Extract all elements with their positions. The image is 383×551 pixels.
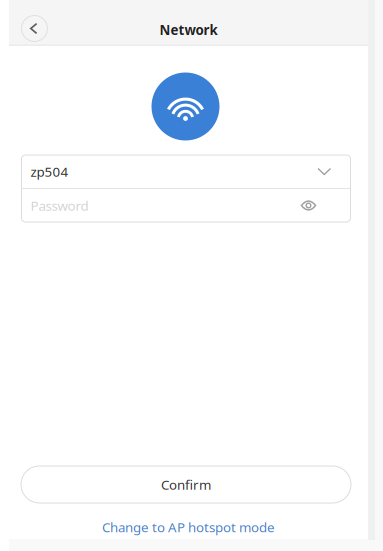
staticText: Network xyxy=(159,21,217,39)
button[interactable]: zp504 xyxy=(21,155,350,188)
staticText: Change to AP hotspot mode xyxy=(102,518,275,536)
button[interactable]: Back xyxy=(17,11,51,45)
staticText: zp504 xyxy=(30,163,68,180)
button[interactable]: Confirm xyxy=(21,466,351,503)
staticText: Password xyxy=(30,197,88,214)
button[interactable]: Show password xyxy=(297,194,319,216)
staticText: Confirm xyxy=(161,476,211,493)
button[interactable]: Change to AP hotspot mode xyxy=(9,517,368,537)
